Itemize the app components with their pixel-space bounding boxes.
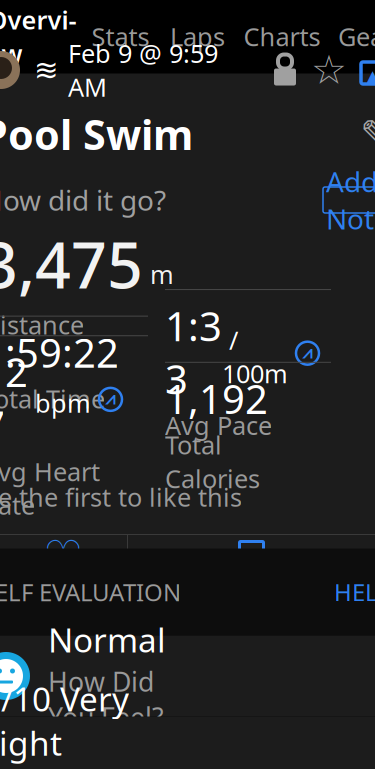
staticText: SELF EVALUATION bbox=[0, 576, 181, 608]
staticText: Distance bbox=[0, 308, 84, 341]
button[interactable]: HELP bbox=[334, 570, 375, 614]
button[interactable]: Like bbox=[0, 535, 127, 579]
button[interactable]: Normal bbox=[0, 635, 375, 716]
staticText: ✎ bbox=[360, 112, 375, 156]
staticText: ☆ bbox=[311, 47, 347, 93]
staticText: Normal bbox=[48, 617, 166, 662]
staticText: Total Time bbox=[0, 382, 105, 415]
staticText: HELP bbox=[334, 576, 375, 608]
button[interactable]: Stats bbox=[82, 3, 159, 73]
staticText: 1:33 bbox=[165, 299, 222, 405]
staticText: Feb 9 @ 9:59 AM bbox=[68, 36, 218, 104]
button[interactable]: Favorite bbox=[306, 50, 352, 90]
staticText: /100m bbox=[222, 323, 288, 390]
staticText: ⩘ bbox=[105, 391, 115, 408]
staticText: bpm bbox=[28, 386, 91, 420]
button[interactable]: Edit title bbox=[354, 112, 375, 156]
staticText: Be the first to like this bbox=[0, 480, 242, 514]
staticText: How did it go? bbox=[0, 181, 166, 219]
staticText: m bbox=[143, 257, 174, 291]
staticText: ♡ bbox=[43, 531, 84, 583]
staticText: Total Calories bbox=[165, 428, 260, 495]
staticText: ≋ bbox=[34, 53, 59, 87]
staticText: Gear bbox=[338, 20, 375, 53]
staticText: Laps bbox=[170, 20, 225, 53]
staticText: Overview bbox=[0, 3, 76, 70]
staticText: Pool Swim bbox=[0, 107, 193, 161]
button[interactable]: Gear bbox=[328, 3, 375, 73]
staticText: 3,475 bbox=[0, 223, 143, 306]
button[interactable]: 1/10 Very Light bbox=[0, 716, 375, 769]
staticText: Stats bbox=[91, 20, 149, 53]
staticText: 127 bbox=[0, 345, 28, 451]
staticText: ⩘ bbox=[302, 345, 312, 362]
staticText: 1/10 Very Light bbox=[0, 676, 129, 765]
button[interactable]: Overview bbox=[0, 3, 82, 73]
button[interactable]: Privacy bbox=[264, 50, 306, 90]
button[interactable]: Add photo bbox=[352, 50, 375, 90]
staticText: How Did You Feel? bbox=[48, 664, 164, 734]
button[interactable]: Laps bbox=[159, 3, 236, 73]
staticText: Avg Pace bbox=[165, 408, 272, 442]
button[interactable]: Charts bbox=[236, 3, 328, 73]
staticText: Charts bbox=[243, 20, 320, 53]
button[interactable]: Comment bbox=[128, 535, 375, 579]
staticText: 1,192 bbox=[165, 372, 268, 425]
staticText: ▲ bbox=[366, 67, 375, 85]
button[interactable]: Add Note bbox=[323, 187, 375, 213]
staticText: Add Note bbox=[326, 163, 375, 237]
staticText: Avg Heart Rate bbox=[0, 454, 100, 522]
staticText: 1:59:22 bbox=[0, 326, 119, 379]
